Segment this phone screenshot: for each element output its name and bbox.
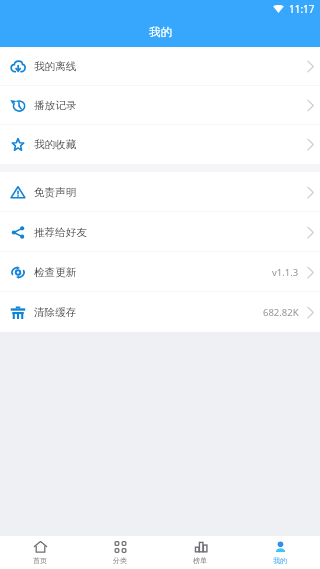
- staticText: 682.82K: [263, 306, 299, 319]
- staticText: 我的: [149, 25, 172, 39]
- staticText: 分类: [113, 556, 127, 565]
- button[interactable]: 推荐给好友: [0, 212, 320, 252]
- staticText: 免责声明: [34, 186, 77, 199]
- staticText: 检查更新: [34, 266, 77, 279]
- staticText: 首页: [33, 556, 47, 565]
- button[interactable]: 榜单: [160, 536, 240, 569]
- staticText: 推荐给好友: [34, 226, 87, 239]
- staticText: 我的: [273, 556, 287, 565]
- staticText: 榜单: [193, 556, 207, 565]
- staticText: 我的离线: [34, 60, 77, 73]
- button[interactable]: 我的收藏: [0, 125, 320, 164]
- button[interactable]: 首页: [0, 536, 80, 569]
- button[interactable]: 播放记录: [0, 86, 320, 125]
- button[interactable]: 我的离线: [0, 47, 320, 86]
- staticText: v1.1.3: [272, 266, 299, 279]
- staticText: 清除缓存: [34, 306, 77, 319]
- button[interactable]: 分类: [80, 536, 160, 569]
- staticText: 11:17: [289, 2, 315, 16]
- button[interactable]: 免责声明: [0, 172, 320, 212]
- button[interactable]: 检查更新: [0, 252, 320, 292]
- staticText: 我的收藏: [34, 138, 77, 151]
- button[interactable]: 我的: [240, 536, 320, 569]
- staticText: 播放记录: [34, 99, 77, 112]
- button[interactable]: 清除缓存: [0, 292, 320, 332]
